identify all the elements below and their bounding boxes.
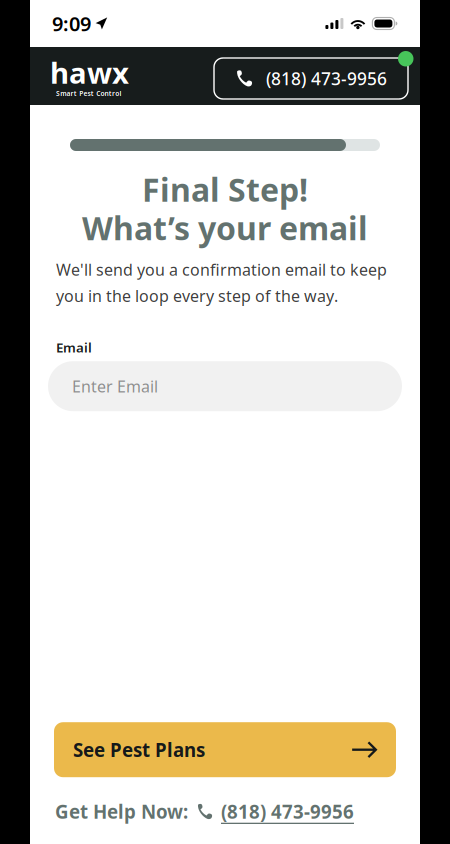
staticText: What’s your email [82,206,368,249]
staticText: Enter Email [72,376,158,397]
button[interactable]: (818) 473-9956 [214,58,408,99]
staticText: Smart Pest Control [56,89,121,98]
staticText: (818) 473-9956 [221,799,354,824]
staticText: See Pest Plans [73,737,205,762]
staticText: 9:09 [52,10,91,37]
staticText: Final Step! [142,168,308,210]
staticText: Email [56,338,92,356]
staticText: you in the loop every step of the way. [56,285,338,306]
staticText: Get Help Now: [55,799,188,824]
staticText: We'll send you a confirmation email to k… [56,259,387,280]
staticText: (818) 473-9956 [266,67,387,90]
button[interactable]: See Pest Plans [54,722,396,777]
button[interactable]: (818) 473-9956 [221,799,354,824]
staticText: hawx [50,53,129,92]
